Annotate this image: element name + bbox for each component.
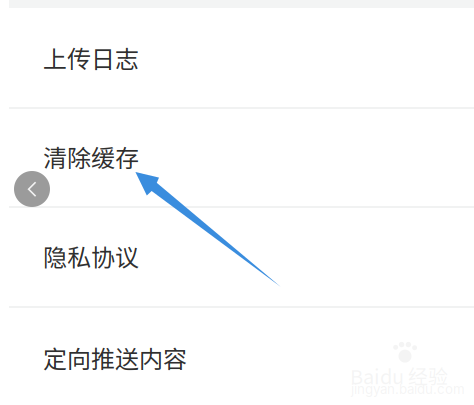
staticText: 清除缓存 bbox=[43, 139, 139, 174]
staticText: jingyan.baidu.com bbox=[351, 381, 465, 397]
staticText: 隐私协议 bbox=[43, 239, 139, 273]
button[interactable]: 清除缓存 bbox=[0, 107, 474, 206]
button[interactable]: 定向推送内容 bbox=[0, 306, 474, 405]
staticText: 上传日志 bbox=[43, 40, 139, 75]
button[interactable]: 上传日志 bbox=[0, 8, 474, 107]
staticText: 定向推送内容 bbox=[43, 340, 187, 375]
button[interactable]: 隐私协议 bbox=[0, 206, 474, 306]
button[interactable]: Back bbox=[14, 171, 50, 207]
staticText: Baidu 经验 bbox=[350, 361, 448, 390]
